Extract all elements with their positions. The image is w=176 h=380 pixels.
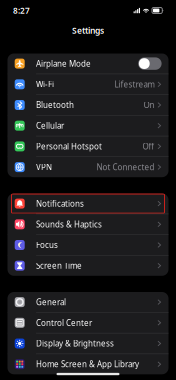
staticText: Personal Hotspot bbox=[36, 141, 102, 152]
button[interactable]: Focus bbox=[7, 235, 168, 255]
button[interactable]: VPN bbox=[7, 157, 168, 177]
staticText: VPN bbox=[36, 162, 52, 172]
button[interactable]: Cellular bbox=[7, 116, 168, 136]
button[interactable]: General bbox=[7, 292, 168, 312]
button[interactable]: Notifications bbox=[7, 193, 168, 214]
button[interactable]: Sounds & Haptics bbox=[7, 214, 168, 234]
button[interactable]: Personal Hotspot bbox=[7, 136, 168, 156]
staticText: Off bbox=[142, 141, 154, 152]
staticText: General bbox=[36, 297, 66, 307]
staticText: Control Center bbox=[36, 318, 92, 328]
staticText: Screen Time bbox=[36, 260, 82, 271]
staticText: Sounds & Haptics bbox=[36, 219, 102, 229]
staticText: 8:27 bbox=[13, 5, 30, 16]
button[interactable]: Home Screen & App Library bbox=[7, 354, 168, 374]
button[interactable]: Airplane Mode bbox=[7, 53, 168, 74]
staticText: On bbox=[143, 100, 154, 110]
staticText: Bluetooth bbox=[36, 100, 74, 110]
staticText: Wi-Fi bbox=[36, 79, 54, 89]
staticText: Not Connected bbox=[96, 162, 154, 172]
staticText: Focus bbox=[36, 240, 58, 250]
staticText: Display & Brightness bbox=[36, 338, 114, 349]
button[interactable]: Control Center bbox=[7, 313, 168, 333]
button[interactable]: Bluetooth bbox=[7, 95, 168, 115]
button[interactable]: Wi-Fi bbox=[7, 74, 168, 94]
staticText: Cellular bbox=[36, 120, 64, 131]
staticText: Notifications bbox=[36, 198, 84, 209]
staticText: Home Screen & App Library bbox=[36, 359, 139, 369]
button[interactable]: Display & Brightness bbox=[7, 333, 168, 354]
staticText: Lifestream bbox=[114, 79, 154, 89]
staticText: Settings bbox=[72, 25, 104, 36]
button[interactable]: Screen Time bbox=[7, 256, 168, 276]
staticText: Airplane Mode bbox=[36, 58, 91, 69]
